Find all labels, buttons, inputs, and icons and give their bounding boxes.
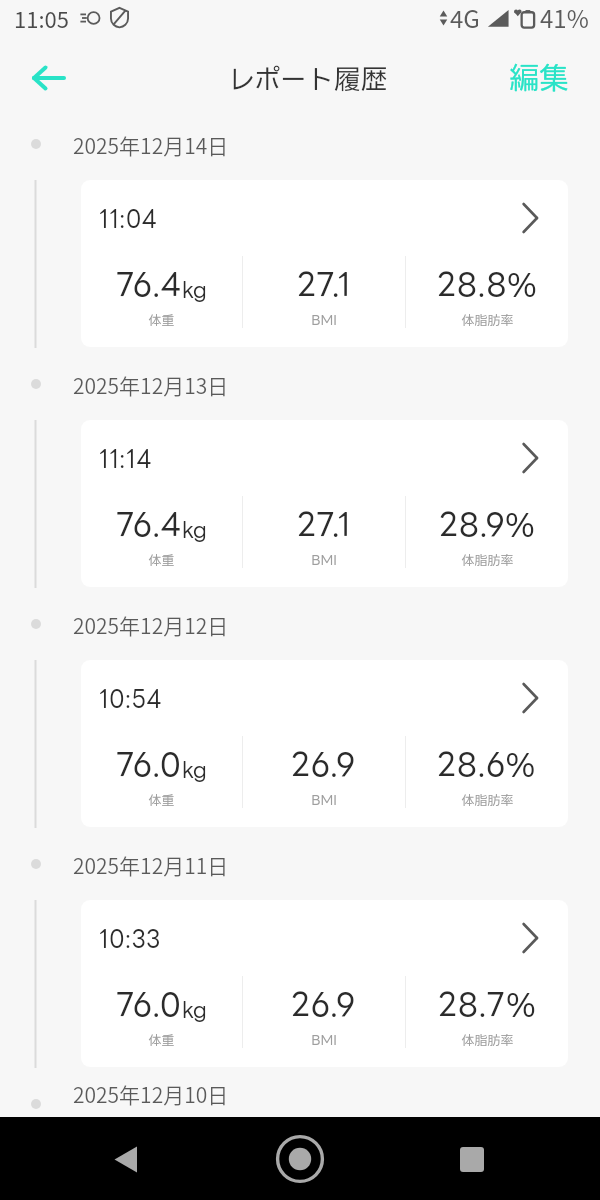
staticText: 28.7%: [438, 988, 537, 1021]
button[interactable]: Recent apps: [432, 1119, 512, 1199]
staticText: 27.1: [297, 268, 352, 301]
staticText: 11:14: [99, 446, 152, 470]
staticText: 2025年12月13日: [73, 370, 229, 400]
staticText: 2025年12月14日: [73, 130, 229, 160]
staticText: 2025年12月11日: [73, 850, 229, 880]
button[interactable]: Back: [21, 50, 77, 106]
staticText: 体重: [148, 313, 175, 327]
staticText: 76.0: [116, 748, 182, 781]
staticText: 10:54: [99, 686, 163, 710]
staticText: BMI: [311, 1033, 337, 1047]
button[interactable]: 10:54: [81, 660, 568, 827]
button[interactable]: Home: [260, 1119, 340, 1199]
staticText: kg: [182, 277, 207, 300]
button[interactable]: 10:33: [81, 900, 568, 1067]
staticText: レポート履歴: [228, 64, 388, 94]
staticText: 体脂肪率: [461, 1033, 514, 1047]
staticText: kg: [182, 517, 207, 540]
button[interactable]: Back: [86, 1119, 166, 1199]
staticText: 体脂肪率: [461, 793, 514, 807]
button[interactable]: 11:14: [81, 420, 568, 587]
staticText: BMI: [311, 793, 337, 807]
staticText: 体脂肪率: [461, 553, 514, 567]
staticText: 28.9%: [439, 508, 536, 541]
staticText: 11:05: [14, 2, 69, 34]
staticText: 26.9: [291, 748, 357, 781]
staticText: 体重: [148, 793, 175, 807]
staticText: BMI: [311, 313, 337, 327]
staticText: 28.8%: [437, 268, 538, 301]
staticText: 体重: [148, 553, 175, 567]
staticText: 76.4: [116, 268, 182, 301]
staticText: kg: [182, 757, 207, 780]
staticText: 2025年12月12日: [73, 610, 229, 640]
staticText: 76.0: [116, 988, 182, 1021]
staticText: 26.9: [291, 988, 357, 1021]
staticText: 11:04: [99, 206, 158, 230]
button[interactable]: 11:04: [81, 180, 568, 347]
staticText: 76.4: [116, 508, 182, 541]
staticText: 4G: [450, 0, 480, 35]
staticText: 28.6%: [437, 748, 537, 781]
staticText: BMI: [311, 553, 337, 567]
staticText: 体重: [148, 1033, 175, 1047]
staticText: 編集: [509, 61, 569, 94]
staticText: 体脂肪率: [461, 313, 514, 327]
staticText: 41%: [540, 0, 589, 35]
staticText: 2025年12月10日: [73, 1079, 229, 1109]
button[interactable]: 編集: [503, 53, 575, 102]
staticText: 27.1: [297, 508, 352, 541]
staticText: kg: [182, 997, 207, 1020]
staticText: 10:33: [99, 926, 162, 950]
